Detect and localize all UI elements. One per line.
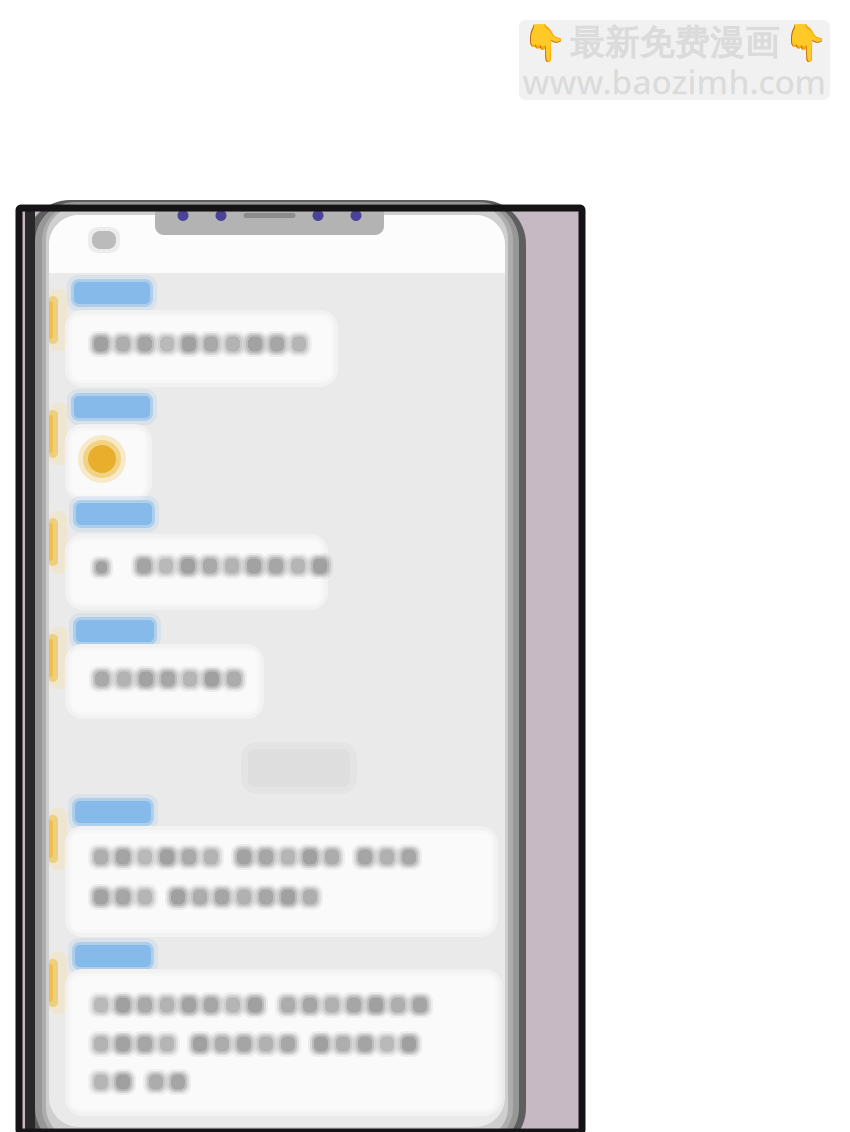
staticText: 👇 <box>782 22 827 63</box>
staticText: 最新免费漫画 <box>569 22 779 64</box>
staticText: 👇 <box>521 22 566 63</box>
staticText: www.baozimh.com <box>522 59 826 103</box>
button[interactable]: Back <box>84 223 124 257</box>
